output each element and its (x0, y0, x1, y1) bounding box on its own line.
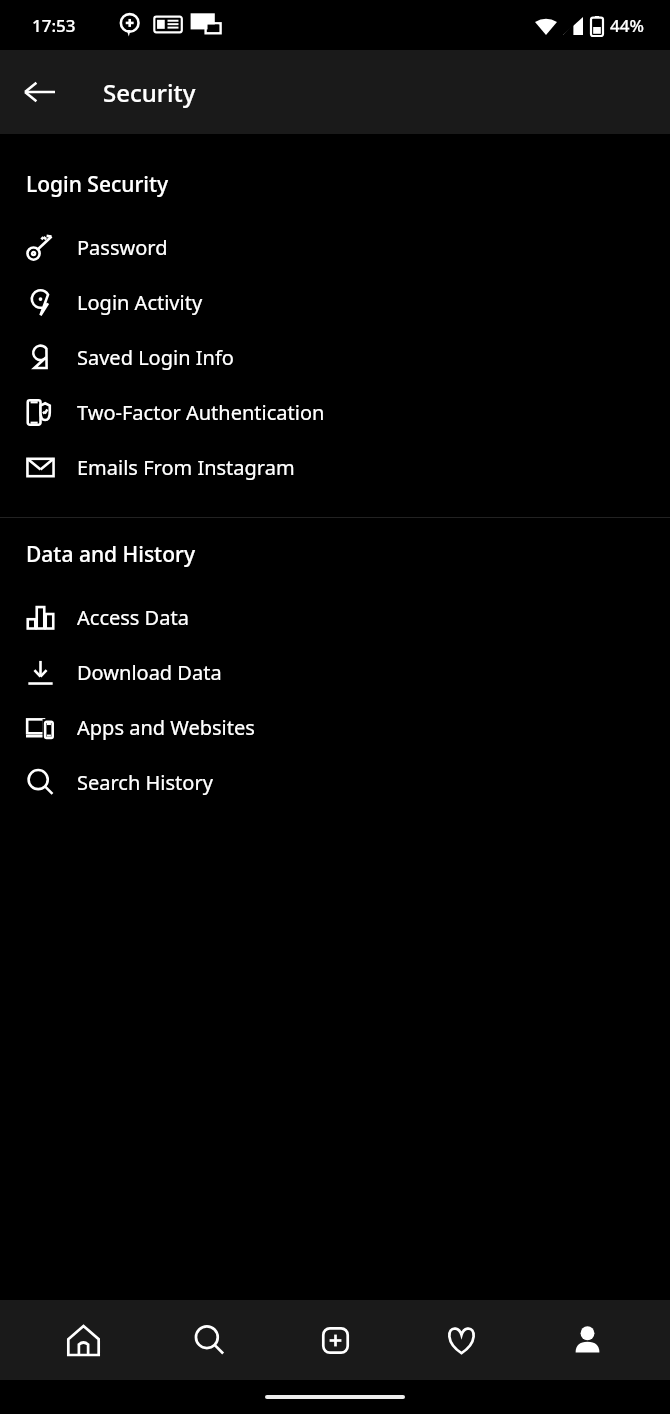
button[interactable]: Two-Factor Authentication (0, 385, 670, 440)
button[interactable]: Profile (544, 1304, 630, 1376)
staticText: Apps and Websites (77, 714, 255, 741)
button[interactable]: Apps and Websites (0, 700, 670, 755)
staticText: Download Data (77, 659, 222, 686)
staticText: 44% (610, 14, 644, 37)
staticText: Access Data (77, 604, 189, 631)
button[interactable]: Saved Login Info (0, 330, 670, 385)
button[interactable]: Access Data (0, 590, 670, 645)
button[interactable]: Password (0, 220, 670, 275)
button[interactable]: New post (292, 1304, 378, 1376)
button[interactable]: Back (10, 62, 70, 122)
staticText: 17:53 (32, 14, 76, 37)
staticText: Saved Login Info (77, 344, 234, 371)
button[interactable]: Download Data (0, 645, 670, 700)
staticText: Data and History (26, 540, 195, 569)
staticText: Login Activity (77, 289, 203, 316)
staticText: Security (103, 76, 196, 109)
button[interactable]: Login Activity (0, 275, 670, 330)
button[interactable]: Emails From Instagram (0, 440, 670, 495)
staticText: Login Security (26, 170, 169, 199)
staticText: Two-Factor Authentication (77, 399, 325, 426)
button[interactable]: Home (40, 1304, 126, 1376)
staticText: Emails From Instagram (77, 454, 295, 481)
staticText: Password (77, 234, 168, 261)
staticText: Search History (77, 769, 213, 796)
button[interactable]: Activity (418, 1304, 504, 1376)
button[interactable]: Search History (0, 755, 670, 810)
button[interactable]: Search (166, 1304, 252, 1376)
